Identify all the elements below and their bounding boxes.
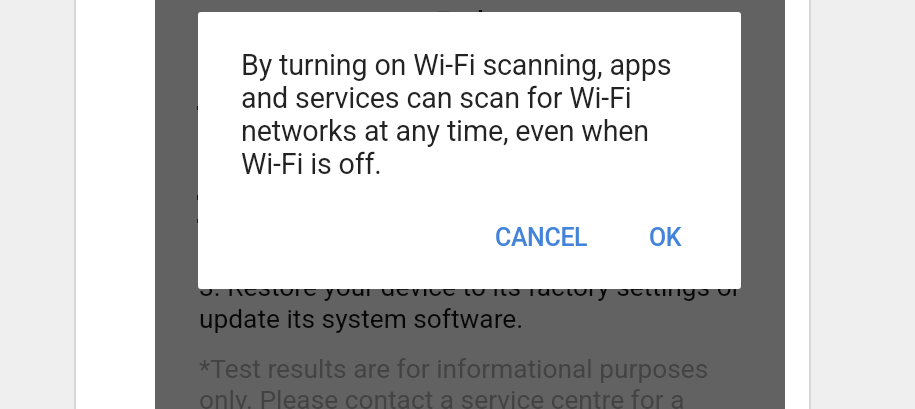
button[interactable]: CANCEL bbox=[481, 214, 602, 261]
staticText: *Test results are for informational purp… bbox=[199, 354, 751, 409]
staticText: By turning on Wi-Fi scanning, apps and s… bbox=[241, 48, 693, 181]
staticText: CANCEL bbox=[495, 223, 588, 252]
staticText: 3. Restore your device to its factory se… bbox=[199, 272, 751, 334]
button[interactable]: OK bbox=[635, 214, 696, 261]
staticText: OK bbox=[649, 223, 682, 252]
